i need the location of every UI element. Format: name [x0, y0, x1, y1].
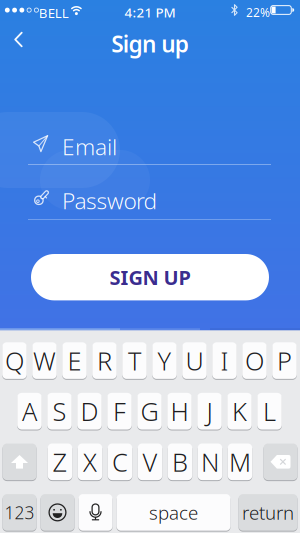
button[interactable]: X [78, 443, 102, 481]
staticText: L [263, 394, 276, 428]
staticText: R [97, 344, 112, 377]
staticText: Password [62, 185, 157, 216]
button[interactable]: Shift [2, 443, 36, 481]
button[interactable]: E [62, 342, 87, 379]
staticText: Q [5, 344, 24, 377]
button[interactable]: W [32, 342, 57, 379]
button[interactable]: O [242, 342, 267, 379]
staticText: F [113, 394, 126, 428]
button[interactable]: M [228, 443, 252, 481]
button[interactable]: Delete [263, 443, 297, 481]
button[interactable]: T [122, 342, 147, 379]
button[interactable]: SIGN UP [31, 254, 269, 300]
staticText: U [185, 344, 203, 377]
button[interactable]: H [167, 392, 192, 430]
button[interactable]: A [17, 392, 42, 430]
staticText: Sign up [111, 29, 189, 59]
button[interactable]: Back [0, 0, 30, 50]
button[interactable]: R [92, 342, 117, 379]
staticText: S [52, 394, 66, 428]
button[interactable]: U [182, 342, 207, 379]
staticText: 22% [246, 4, 270, 20]
staticText: return [242, 500, 294, 525]
staticText: 123 [4, 501, 34, 524]
button[interactable]: 123 [2, 494, 36, 531]
staticText: N [201, 445, 219, 479]
staticText: I [220, 344, 228, 377]
button[interactable]: F [107, 392, 132, 430]
staticText: B [172, 445, 188, 479]
staticText: V [142, 445, 157, 479]
button[interactable]: Password [0, 0, 300, 533]
button[interactable]: S [47, 392, 72, 430]
button[interactable]: Z [48, 443, 72, 481]
staticText: D [80, 394, 98, 428]
button[interactable]: P [272, 342, 297, 379]
staticText: space [149, 500, 198, 525]
button[interactable]: Emoji [40, 494, 74, 531]
staticText: BELL [39, 4, 69, 22]
button[interactable]: N [198, 443, 222, 481]
staticText: H [170, 394, 188, 428]
staticText: Y [157, 344, 171, 377]
staticText: Z [52, 445, 67, 479]
staticText: G [140, 394, 158, 428]
staticText: W [33, 344, 56, 377]
button[interactable]: Dictate [78, 494, 112, 531]
staticText: M [229, 445, 251, 479]
button[interactable]: J [197, 392, 222, 430]
staticText: A [22, 394, 37, 428]
staticText: P [277, 344, 292, 377]
button[interactable]: Email [0, 0, 300, 533]
button[interactable]: Q [2, 342, 27, 379]
button[interactable]: return [238, 494, 297, 531]
staticText: O [245, 344, 264, 377]
button[interactable]: space [116, 494, 230, 531]
staticText: T [128, 344, 141, 377]
staticText: 4:21 PM [124, 3, 175, 21]
button[interactable]: C [108, 443, 132, 481]
staticText: E [67, 344, 81, 377]
button[interactable]: D [77, 392, 102, 430]
button[interactable]: K [227, 392, 252, 430]
staticText: C [112, 445, 128, 479]
button[interactable]: V [138, 443, 162, 481]
button[interactable]: L [257, 392, 282, 430]
staticText: J [206, 394, 212, 428]
staticText: X [83, 445, 97, 479]
button[interactable]: I [212, 342, 237, 379]
staticText: Email [62, 131, 117, 162]
button[interactable]: G [137, 392, 162, 430]
staticText: SIGN UP [109, 264, 190, 290]
button[interactable]: Y [152, 342, 177, 379]
button[interactable]: B [168, 443, 192, 481]
staticText: K [232, 394, 247, 428]
